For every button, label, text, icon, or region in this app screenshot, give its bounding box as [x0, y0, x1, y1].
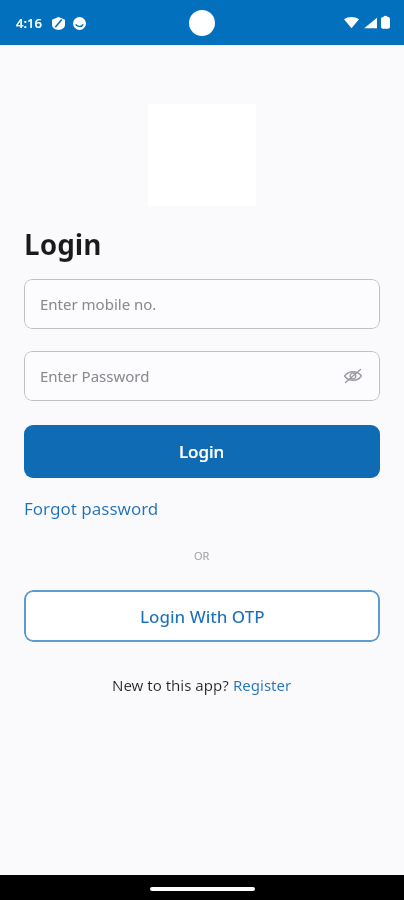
staticText: Login With OTP: [140, 605, 265, 628]
button[interactable]: Toggle password visibility: [340, 363, 366, 389]
staticText: Enter mobile no.: [40, 294, 157, 314]
staticText: Enter Password: [40, 366, 150, 386]
staticText: OR: [194, 548, 210, 563]
staticText: Register: [233, 675, 292, 695]
staticText: Login: [179, 440, 225, 463]
button[interactable]: Forgot password: [24, 495, 159, 522]
staticText: 4:16: [16, 14, 42, 32]
staticText: Login: [24, 225, 102, 263]
button[interactable]: Login: [24, 425, 380, 478]
staticText: New to this app?: [112, 675, 233, 695]
staticText: Forgot password: [24, 497, 159, 520]
button[interactable]: Enter Password: [24, 351, 380, 401]
button[interactable]: Enter mobile no.: [24, 279, 380, 329]
button[interactable]: Login With OTP: [24, 590, 380, 642]
button[interactable]: New to this app?: [112, 675, 292, 695]
